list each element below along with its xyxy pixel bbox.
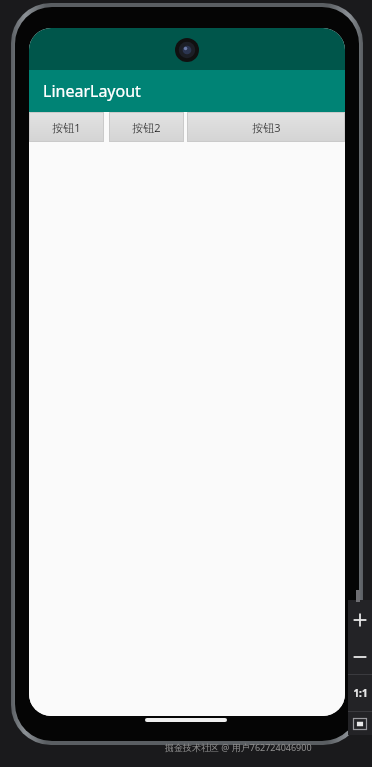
button[interactable]: Fit to screen <box>348 712 372 735</box>
staticText: LinearLayout <box>43 80 141 102</box>
staticText: 按钮1 <box>52 120 81 135</box>
button[interactable]: 1:1 <box>348 675 372 711</box>
button[interactable]: 按钮3 <box>188 113 344 141</box>
button[interactable]: 按钮1 <box>30 113 103 141</box>
staticText: 掘金技术社区 @ 用户762724046900 <box>165 741 312 753</box>
staticText: 按钮3 <box>252 120 281 135</box>
button[interactable]: 按钮2 <box>110 113 183 141</box>
staticText: 1:1 <box>353 686 368 700</box>
staticText: 按钮2 <box>132 120 161 135</box>
button[interactable]: Zoom in <box>348 600 372 640</box>
button[interactable]: Zoom out <box>348 640 372 674</box>
